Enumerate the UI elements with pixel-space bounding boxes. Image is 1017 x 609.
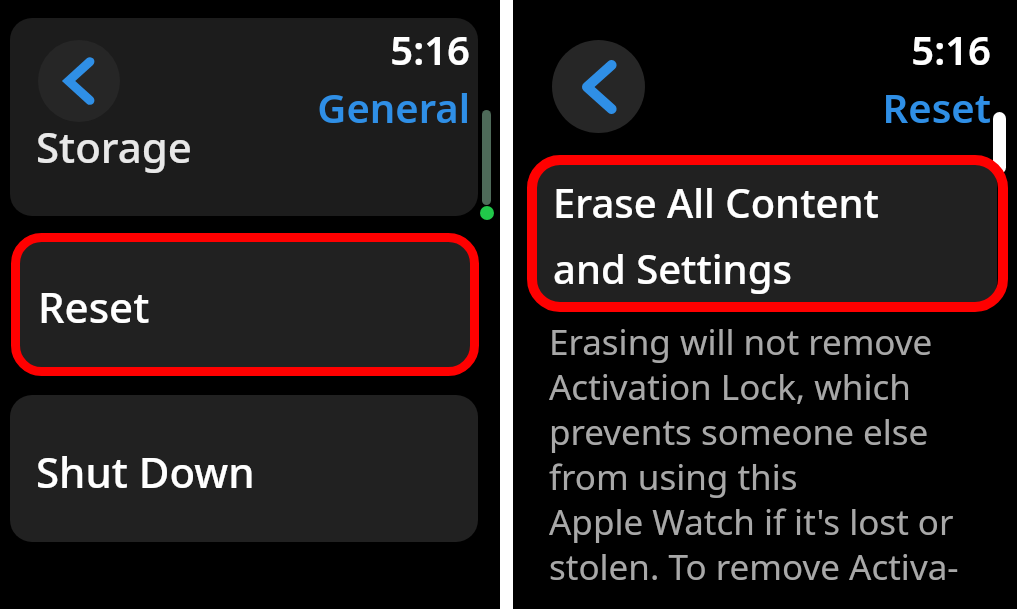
staticText: Erasing will not remove [549,318,933,363]
button[interactable]: Back [38,40,120,122]
staticText: Shut Down [36,443,255,500]
staticText: 5:16 [883,22,991,76]
staticText: Reset [38,278,150,335]
staticText: General [300,80,470,134]
staticText: Activation Lock, which [549,363,911,408]
button[interactable]: Shut Down [10,395,478,542]
staticText: from using this [549,453,798,498]
staticText: Apple Watch if it's lost or [549,498,954,543]
button[interactable]: Reset [16,238,474,371]
staticText: Erase All Content [553,175,879,229]
staticText: prevents someone else [549,408,929,453]
staticText: 5:16 [370,22,470,76]
staticText: Reset [833,80,991,134]
staticText: and Settings [553,241,792,295]
button[interactable]: Back [552,40,645,133]
button[interactable]: Erase All Content [533,161,997,305]
button[interactable]: Storage [10,18,478,216]
staticText: Storage [36,118,192,175]
staticText: stolen. To remove Activa- [549,543,959,588]
